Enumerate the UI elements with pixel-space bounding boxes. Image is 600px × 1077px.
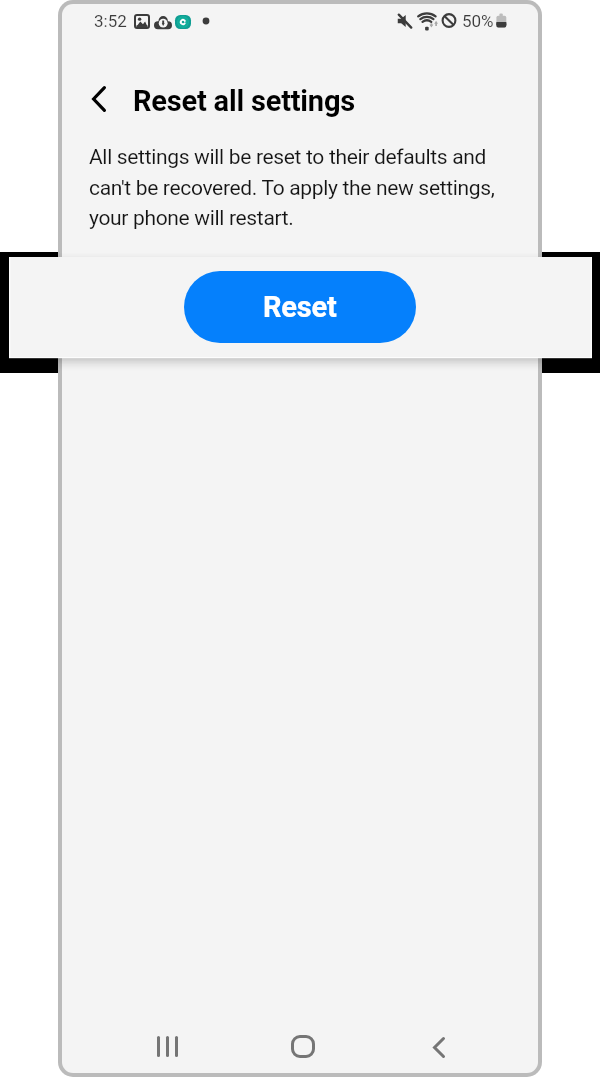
staticText: 50%: [462, 11, 494, 31]
button[interactable]: Back: [409, 1017, 469, 1073]
staticText: Reset: [263, 290, 337, 324]
button[interactable]: Reset: [184, 271, 416, 343]
button[interactable]: Home: [273, 1016, 333, 1073]
staticText: All settings will be reset to their defa…: [89, 145, 501, 230]
button[interactable]: Navigate up: [77, 77, 121, 121]
staticText: 3:52: [94, 11, 127, 31]
staticText: Reset all settings: [133, 84, 355, 118]
button[interactable]: Recent apps: [137, 1016, 197, 1073]
